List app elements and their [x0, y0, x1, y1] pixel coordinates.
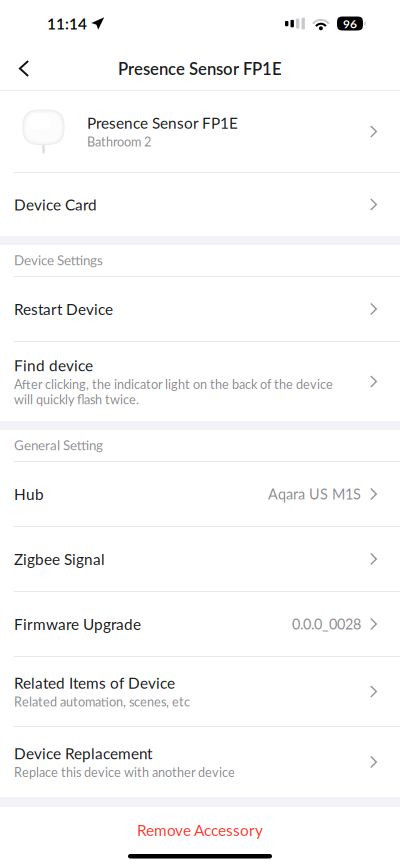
staticText: Presence Sensor FP1E — [87, 114, 238, 132]
button[interactable]: Zigbee Signal — [0, 527, 400, 591]
staticText: Device Settings — [14, 252, 103, 268]
button[interactable]: Device Card — [0, 173, 400, 236]
staticText: Related Items of Device — [14, 674, 175, 692]
button[interactable]: Hub — [0, 462, 400, 526]
button[interactable]: Presence Sensor FP1E — [0, 91, 400, 172]
staticText: Bathroom 2 — [87, 134, 151, 149]
staticText: Find device — [14, 356, 93, 374]
staticText: 0.0.0_0028 — [292, 615, 361, 633]
button[interactable]: Remove Accessory — [0, 807, 400, 853]
staticText: Replace this device with another device — [14, 765, 235, 780]
button[interactable]: Back — [0, 46, 48, 90]
button[interactable]: Find device — [0, 342, 400, 421]
button[interactable]: Firmware Upgrade — [0, 592, 400, 656]
button[interactable]: Device Replacement — [0, 727, 400, 797]
staticText: After clicking, the indicator light on t… — [14, 376, 333, 407]
staticText: 11:14 — [47, 14, 87, 33]
button[interactable]: Related Items of Device — [0, 657, 400, 726]
staticText: Remove Accessory — [137, 821, 263, 839]
staticText: General Setting — [14, 437, 103, 453]
staticText: Device Replacement — [14, 744, 152, 763]
staticText: Firmware Upgrade — [14, 615, 141, 633]
staticText: 96 — [343, 16, 357, 31]
staticText: Device Card — [14, 195, 97, 214]
staticText: Restart Device — [14, 300, 113, 318]
staticText: Presence Sensor FP1E — [118, 58, 282, 78]
staticText: Related automation, scenes, etc — [14, 694, 190, 709]
staticText: Hub — [14, 485, 44, 503]
staticText: Zigbee Signal — [14, 550, 105, 568]
button[interactable]: Restart Device — [0, 277, 400, 341]
staticText: Aqara US M1S — [268, 485, 361, 503]
